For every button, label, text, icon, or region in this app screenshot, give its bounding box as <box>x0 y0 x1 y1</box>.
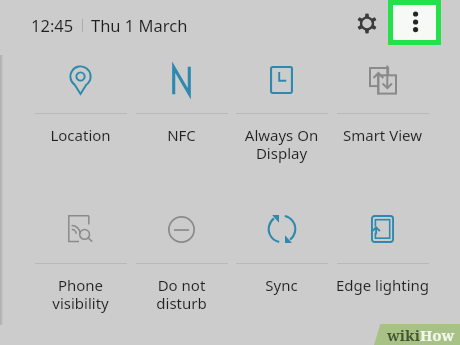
staticText: Smart View <box>332 125 433 145</box>
staticText: Do not disturb <box>131 275 232 314</box>
staticText: 12:45 <box>31 14 74 36</box>
button[interactable]: Edge lighting <box>332 193 433 319</box>
staticText: Phone visibility <box>30 275 131 314</box>
button[interactable]: Do not disturb <box>131 193 232 319</box>
button[interactable]: Smart View <box>332 44 433 169</box>
staticText: Sync <box>231 275 332 295</box>
staticText: How <box>420 325 455 345</box>
staticText: wiki <box>387 325 420 345</box>
button[interactable]: Phone visibility <box>30 193 131 319</box>
button[interactable]: NFC <box>131 44 232 169</box>
button[interactable]: Sync <box>231 193 332 319</box>
staticText: Edge lighting <box>332 275 433 295</box>
button[interactable]: Settings <box>357 12 377 35</box>
staticText: Always On Display <box>231 125 332 164</box>
button[interactable]: Location <box>30 44 131 169</box>
staticText: Location <box>30 125 131 145</box>
staticText: Thu 1 March <box>91 14 188 36</box>
staticText: NFC <box>131 125 232 145</box>
button[interactable]: Always On Display <box>231 44 332 169</box>
button[interactable]: More options <box>388 0 441 45</box>
